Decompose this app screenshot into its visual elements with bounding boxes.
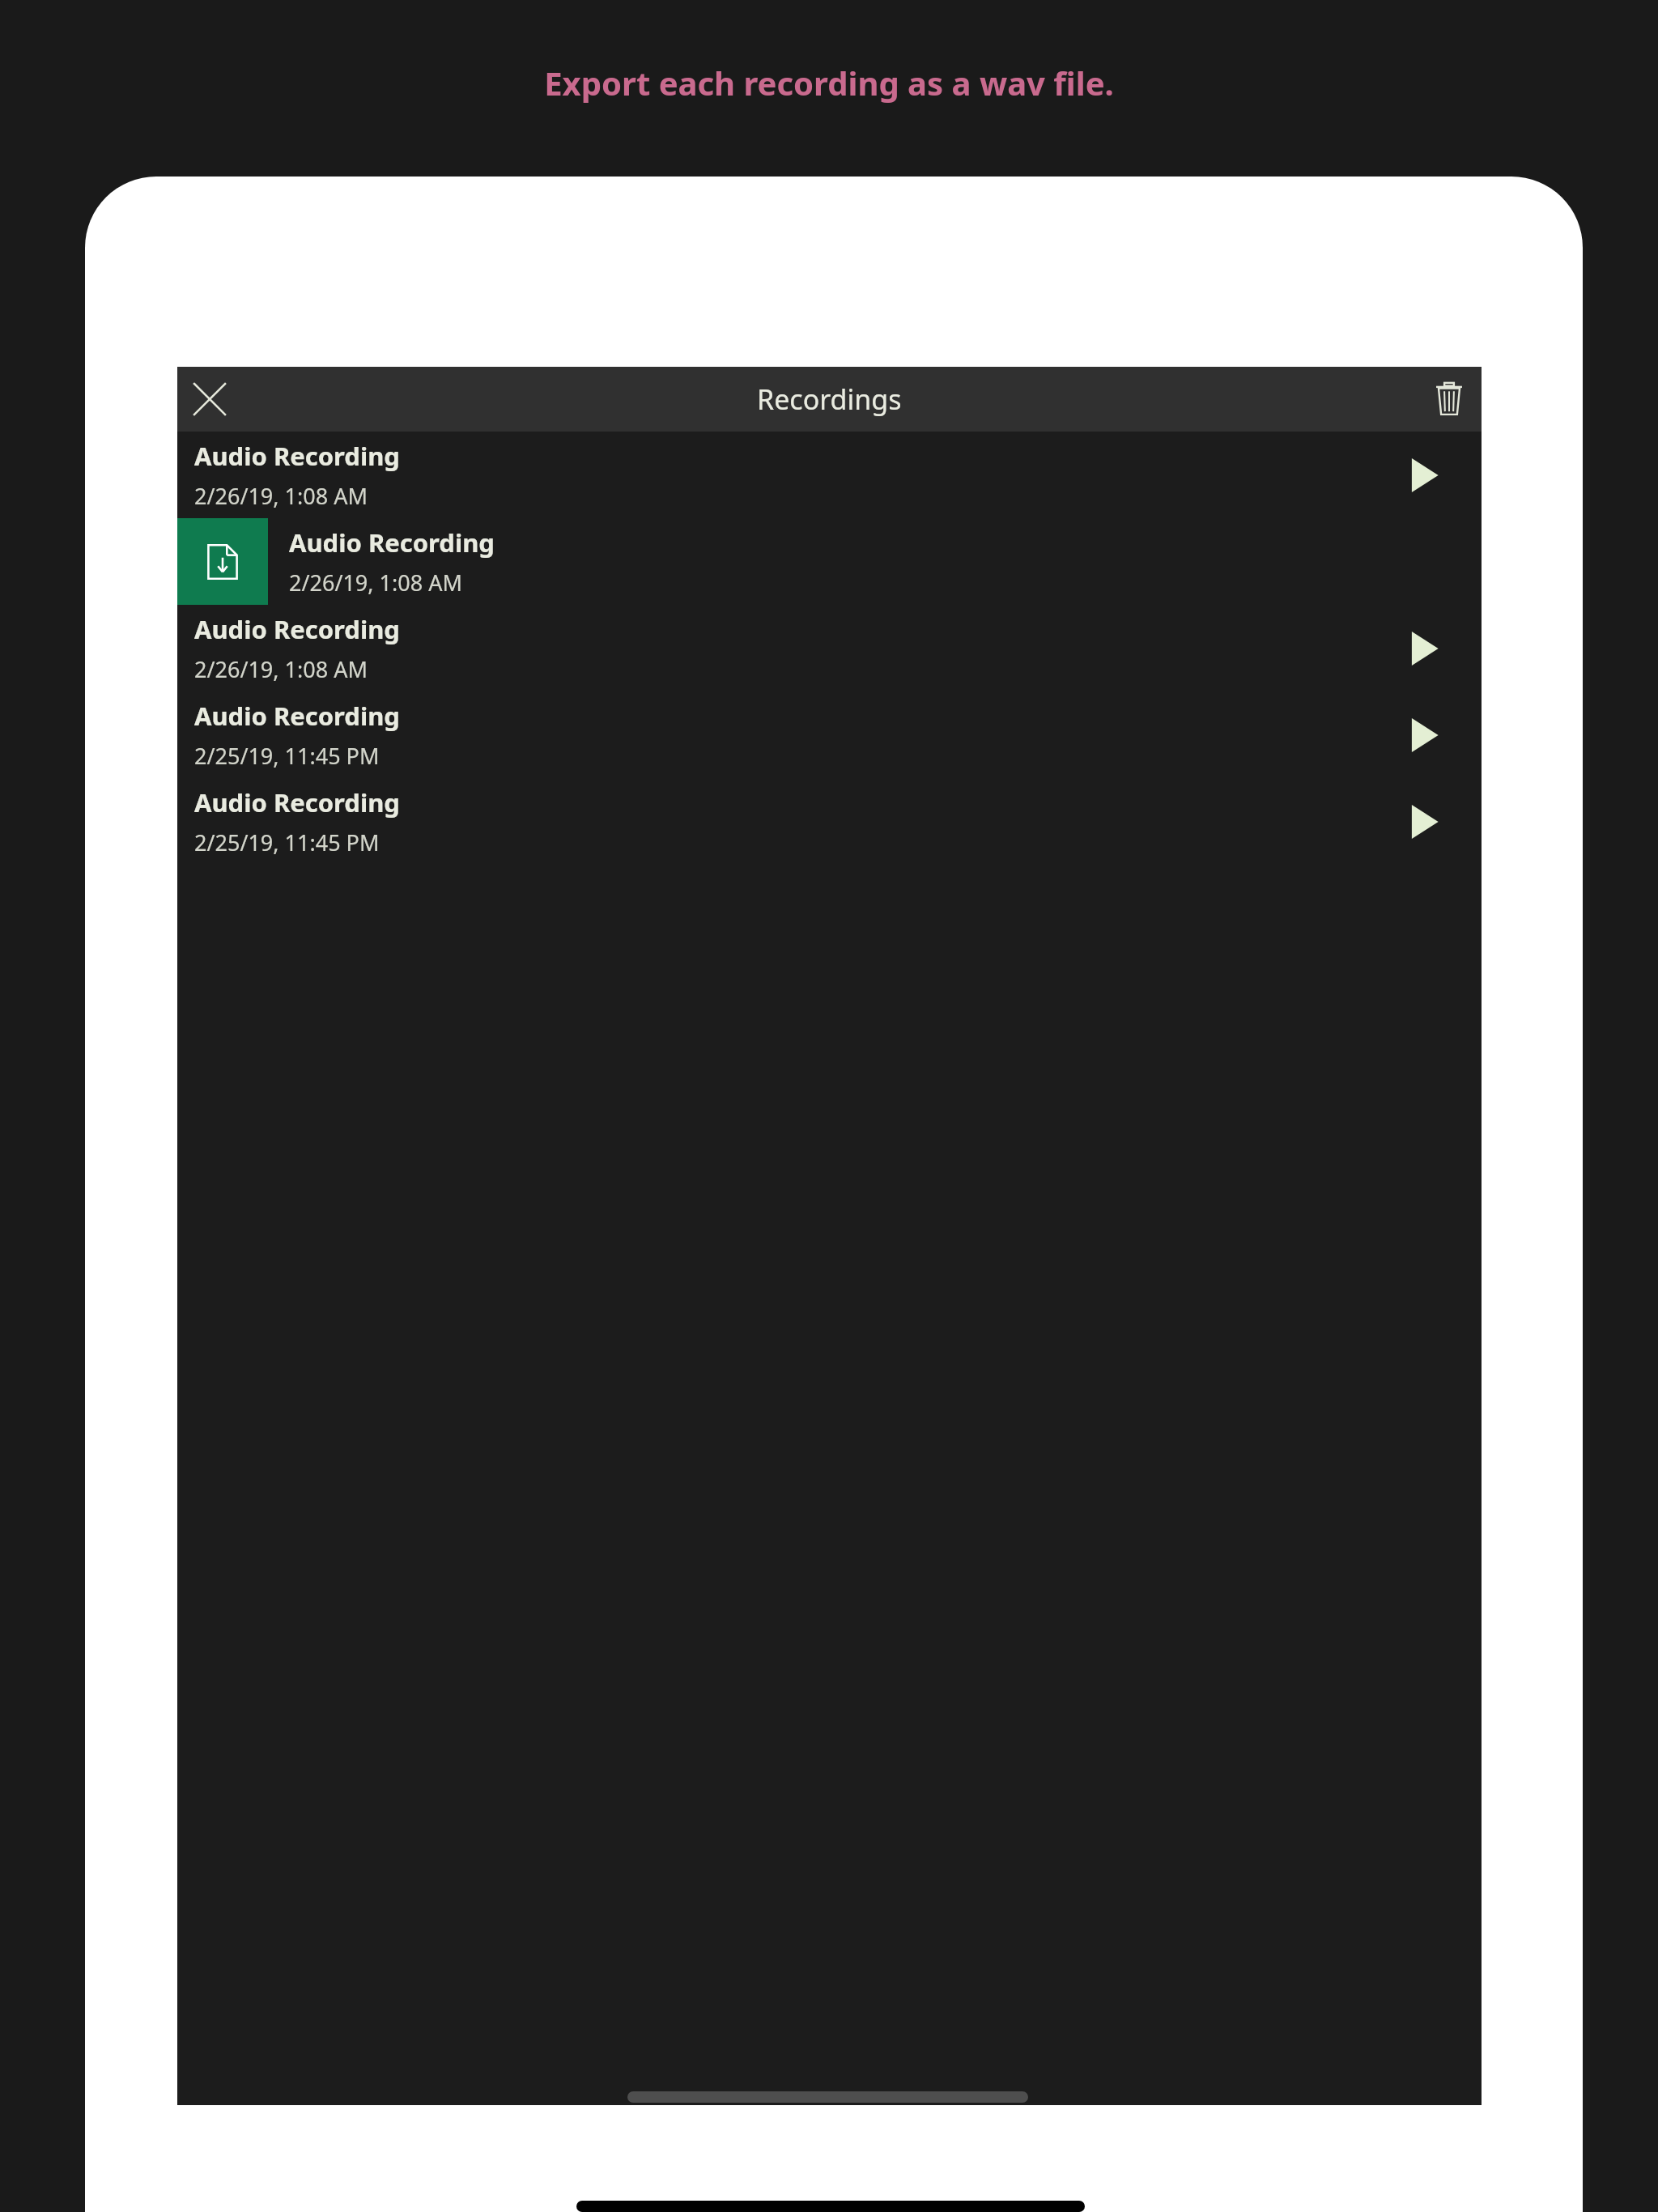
- staticText: 2/26/19, 1:08 AM: [289, 568, 462, 598]
- button[interactable]: Close: [177, 367, 242, 432]
- staticText: Audio Recording: [194, 439, 400, 473]
- staticText: 2/25/19, 11:45 PM: [194, 827, 380, 857]
- button[interactable]: Export as wav file: [177, 518, 268, 605]
- staticText: Audio Recording: [194, 785, 400, 819]
- button[interactable]: Play recording: [1380, 432, 1467, 518]
- staticText: Audio Recording: [194, 612, 400, 646]
- button[interactable]: Audio Recording: [177, 432, 1482, 518]
- staticText: 2/26/19, 1:08 AM: [194, 654, 368, 684]
- button[interactable]: Audio Recording: [177, 691, 1482, 778]
- staticText: 2/26/19, 1:08 AM: [194, 481, 368, 511]
- button[interactable]: Play recording: [1380, 605, 1467, 691]
- button[interactable]: Audio Recording: [177, 605, 1482, 691]
- staticText: 2/25/19, 11:45 PM: [194, 741, 380, 771]
- staticText: Audio Recording: [289, 525, 495, 559]
- staticText: Export each recording as a wav file.: [0, 61, 1658, 104]
- staticText: Recordings: [757, 381, 902, 418]
- button[interactable]: Delete all recordings: [1417, 367, 1482, 432]
- button[interactable]: Audio Recording: [177, 778, 1482, 865]
- button[interactable]: Play recording: [1380, 691, 1467, 778]
- button[interactable]: Play recording: [1380, 778, 1467, 865]
- staticText: Audio Recording: [194, 699, 400, 733]
